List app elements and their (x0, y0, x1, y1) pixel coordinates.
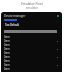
button[interactable]: Item (1, 59, 62, 63)
button[interactable]: Item (1, 55, 62, 59)
staticText: Item (4, 43, 10, 47)
button[interactable]: Item (1, 63, 62, 67)
staticText: Item (4, 35, 10, 39)
staticText: Device manager (4, 14, 26, 18)
button[interactable]: Item (1, 35, 62, 39)
button[interactable]: Item (1, 43, 62, 47)
staticText: Item (4, 67, 10, 71)
staticText: emulator (26, 6, 39, 10)
staticText: Item (4, 59, 10, 63)
button[interactable]: Item (1, 47, 62, 51)
button[interactable]: Item (1, 39, 62, 43)
button[interactable]: Item (1, 51, 62, 55)
staticText: Item (4, 63, 10, 67)
button[interactable]: Device manager (1, 12, 62, 19)
staticText: Emulator Pixel (21, 2, 43, 6)
staticText: Tag Default (5, 23, 19, 26)
staticText: Item (4, 51, 10, 55)
button[interactable]: Item (1, 67, 62, 71)
staticText: Item (4, 55, 10, 59)
staticText: Item (4, 47, 10, 51)
staticText: Item (4, 39, 10, 43)
